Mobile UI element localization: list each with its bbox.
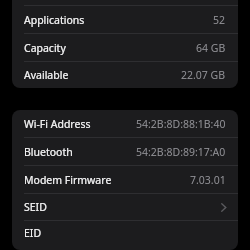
staticText: 64 GB <box>196 41 226 55</box>
staticText: 54:2B:8D:88:1B:40 <box>136 117 226 131</box>
staticText: SEID <box>24 200 47 214</box>
staticText: Modem Firmware <box>24 173 112 187</box>
other: Open SEID <box>221 203 226 212</box>
staticText: 54:2B:8D:89:17:A0 <box>136 145 226 159</box>
staticText: EID <box>24 226 42 240</box>
staticText: 7.03.01 <box>190 173 226 187</box>
staticText: Bluetooth <box>24 145 73 159</box>
button[interactable]: EID <box>12 221 238 250</box>
staticText: Wi-Fi Address <box>24 117 91 131</box>
button[interactable]: Capacity <box>12 34 238 61</box>
button[interactable]: Bluetooth <box>12 138 238 165</box>
staticText: 22.07 GB <box>181 68 226 82</box>
staticText: 52 <box>213 13 226 27</box>
staticText: Capacity <box>24 41 66 55</box>
button[interactable]: Available <box>12 62 238 88</box>
button[interactable]: Applications <box>12 6 238 33</box>
button[interactable]: SEID <box>12 194 238 220</box>
staticText: Available <box>24 68 69 82</box>
staticText: Applications <box>24 13 85 27</box>
button[interactable]: Modem Firmware <box>12 166 238 193</box>
button[interactable]: Wi-Fi Address <box>12 110 238 137</box>
